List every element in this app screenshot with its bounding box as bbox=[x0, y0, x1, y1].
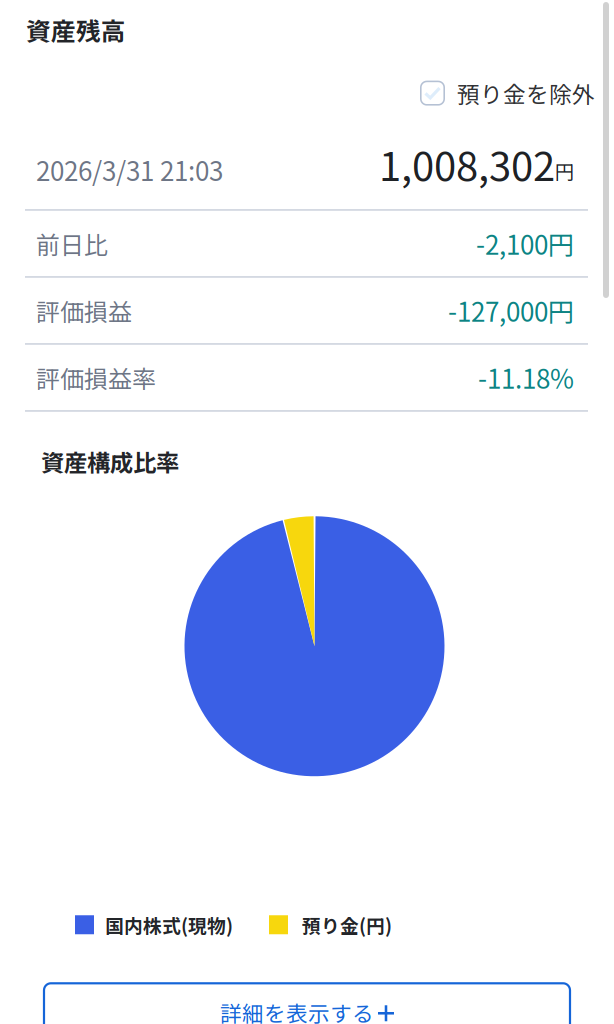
staticText: 資産残高 bbox=[26, 12, 126, 48]
button[interactable]: 預り金を除外 bbox=[420, 77, 595, 109]
staticText: 前日比 bbox=[36, 226, 108, 261]
staticText: 評価損益率 bbox=[36, 360, 156, 395]
staticText: 2026/3/31 21:03 bbox=[36, 151, 223, 188]
staticText: -127,000円 bbox=[448, 292, 574, 329]
staticText: 資産構成比率 bbox=[41, 444, 179, 478]
staticText: 評価損益 bbox=[36, 293, 132, 328]
button[interactable]: 詳細を表示する bbox=[44, 983, 570, 1024]
staticText: 預り金を除外 bbox=[457, 77, 595, 109]
staticText: 詳細を表示する bbox=[220, 997, 374, 1024]
staticText: 1,008,302 bbox=[379, 134, 555, 192]
staticText: 預り金(円) bbox=[302, 911, 392, 938]
staticText: -2,100円 bbox=[476, 225, 574, 262]
staticText: -11.18% bbox=[478, 359, 574, 396]
staticText: 国内株式(現物) bbox=[105, 911, 233, 938]
staticText: 円 bbox=[555, 156, 574, 184]
